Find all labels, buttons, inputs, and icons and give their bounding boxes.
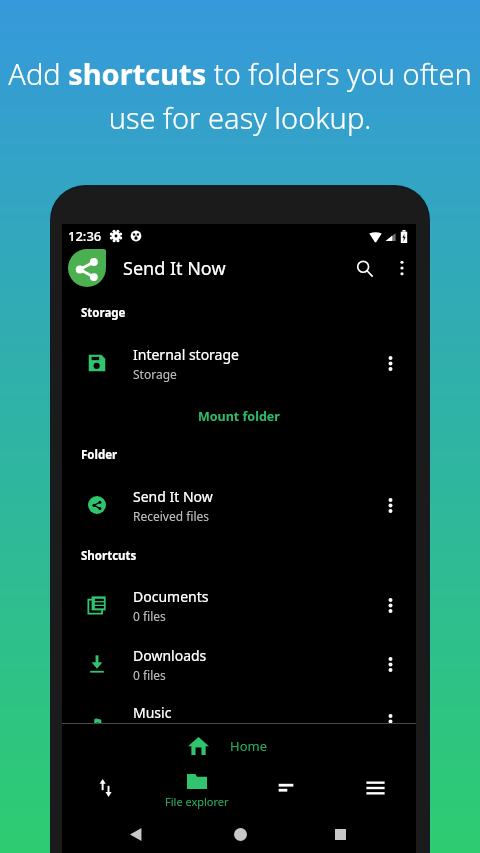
staticText: Internal storage — [133, 345, 239, 364]
staticText: Mount folder — [198, 408, 280, 425]
staticText: Home — [230, 737, 267, 755]
button[interactable]: Options — [372, 583, 408, 627]
staticText: Shortcuts — [81, 548, 137, 564]
staticText: File explorer — [165, 794, 229, 809]
button[interactable]: Search — [346, 248, 382, 288]
button[interactable]: Music — [62, 699, 416, 743]
staticText: 0 files — [133, 608, 166, 624]
button[interactable]: Back — [107, 815, 165, 853]
staticText: Storage — [133, 366, 177, 382]
button[interactable]: More options — [386, 248, 418, 288]
button[interactable]: Sort — [258, 764, 314, 812]
staticText: Music — [133, 703, 172, 722]
button[interactable]: Downloads — [62, 642, 416, 686]
button[interactable]: Options — [372, 483, 408, 527]
button[interactable]: Options — [372, 699, 408, 743]
button[interactable]: File explorer — [157, 764, 237, 812]
button[interactable]: Menu — [347, 764, 403, 812]
staticText: Storage — [81, 305, 126, 321]
button[interactable]: Recents — [311, 815, 369, 853]
button[interactable]: Options — [372, 642, 408, 686]
button[interactable]: Options — [372, 341, 408, 385]
button[interactable]: Transfer — [78, 764, 134, 812]
staticText: Folder — [81, 447, 118, 463]
staticText: 12:36 — [68, 227, 102, 245]
staticText: Add shortcuts to folders you often use f… — [1, 54, 479, 137]
button[interactable]: Home — [211, 815, 269, 853]
staticText: Send It Now — [123, 256, 226, 281]
staticText: Send It Now — [133, 487, 213, 506]
staticText: Documents — [133, 587, 209, 606]
button[interactable]: Send It Now — [62, 483, 416, 527]
button[interactable]: Mount folder — [62, 404, 416, 428]
staticText: 0 files — [133, 667, 166, 683]
staticText: Downloads — [133, 646, 207, 665]
button[interactable]: Home — [188, 733, 280, 759]
staticText: Received files — [133, 508, 210, 524]
button[interactable]: Documents — [62, 583, 416, 627]
button[interactable]: Internal storage — [62, 341, 416, 385]
